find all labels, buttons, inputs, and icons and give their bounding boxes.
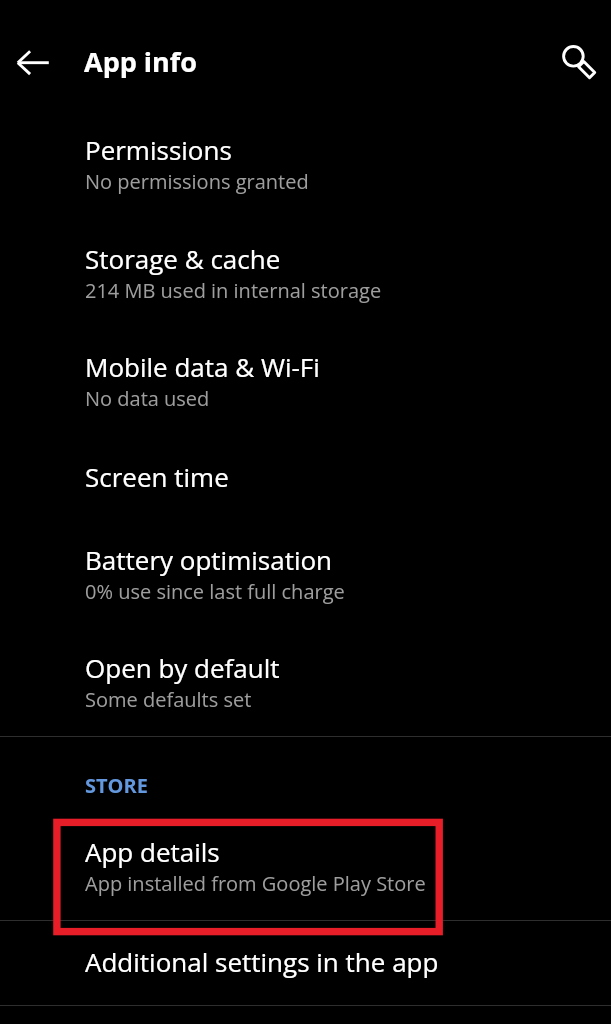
button[interactable]: App details (0, 820, 611, 912)
staticText: No data used (85, 385, 210, 412)
staticText: Some defaults set (85, 686, 252, 713)
button[interactable]: Navigate up (10, 38, 59, 87)
staticText: STORE (85, 772, 148, 799)
button[interactable]: Storage & cache (0, 227, 611, 319)
button[interactable]: Battery optimisation (0, 528, 611, 620)
staticText: Mobile data & Wi-Fi (85, 349, 320, 384)
staticText: 214 MB used in internal storage (85, 277, 382, 304)
staticText: App info (84, 43, 197, 80)
staticText: Screen time (85, 459, 229, 494)
staticText: App installed from Google Play Store (85, 870, 426, 897)
staticText: Additional settings in the app (85, 944, 439, 979)
button[interactable]: Additional settings in the app (0, 930, 611, 986)
staticText: 0% use since last full charge (85, 578, 345, 605)
button[interactable]: Mobile data & Wi-Fi (0, 335, 611, 427)
staticText: Open by default (85, 650, 280, 685)
staticText: Battery optimisation (85, 542, 333, 577)
staticText: Storage & cache (85, 241, 281, 276)
button[interactable]: Permissions (0, 118, 611, 210)
button[interactable]: Open by default (0, 636, 611, 728)
staticText: Permissions (85, 132, 232, 167)
staticText: App details (85, 834, 220, 869)
staticText: No permissions granted (85, 168, 309, 195)
button[interactable]: Search (552, 38, 601, 87)
button[interactable]: Screen time (0, 445, 611, 501)
